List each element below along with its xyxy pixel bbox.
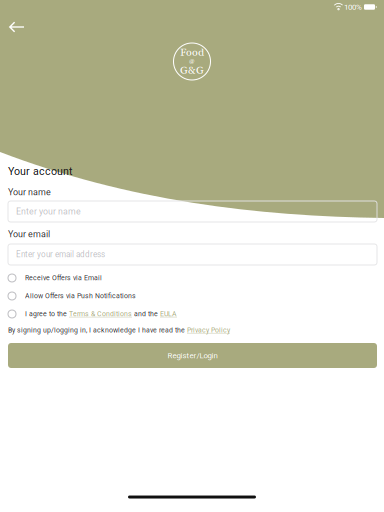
button[interactable]: Allow Offers via Push Notifications <box>0 287 384 305</box>
staticText: Enter your name <box>16 206 81 217</box>
staticText: Food <box>180 46 204 59</box>
button[interactable]: Register/Login <box>8 343 377 368</box>
staticText: By signing up/logging in, I acknowledge … <box>8 326 187 334</box>
staticText: Terms & Conditions <box>69 310 132 318</box>
staticText: @ <box>189 58 195 65</box>
staticText: Receive Offers via Email <box>25 274 102 282</box>
staticText: Your email <box>8 229 50 239</box>
staticText: EULA <box>160 310 177 318</box>
staticText: Your name <box>8 187 51 197</box>
staticText: Privacy Policy <box>187 326 230 334</box>
staticText: I agree to the <box>25 310 69 318</box>
button[interactable]: Back <box>0 13 33 41</box>
staticText: Your account <box>8 165 72 177</box>
staticText: Register/Login <box>167 351 217 360</box>
button[interactable]: Receive Offers via Email <box>0 269 384 287</box>
staticText: and the <box>132 310 160 318</box>
button[interactable]: I agree to the <box>0 305 384 323</box>
staticText: Allow Offers via Push Notifications <box>25 292 136 300</box>
staticText: 100% <box>344 2 362 12</box>
staticText: G&G <box>180 64 204 77</box>
staticText: Enter your email address <box>16 250 105 259</box>
